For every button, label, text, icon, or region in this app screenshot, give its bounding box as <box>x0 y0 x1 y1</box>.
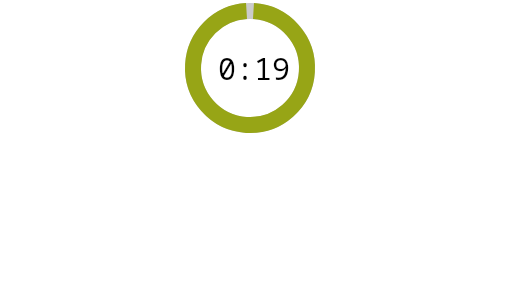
staticText: 0:19 <box>218 48 290 89</box>
button[interactable]: Timer 0:19, tap to pause <box>185 3 315 133</box>
